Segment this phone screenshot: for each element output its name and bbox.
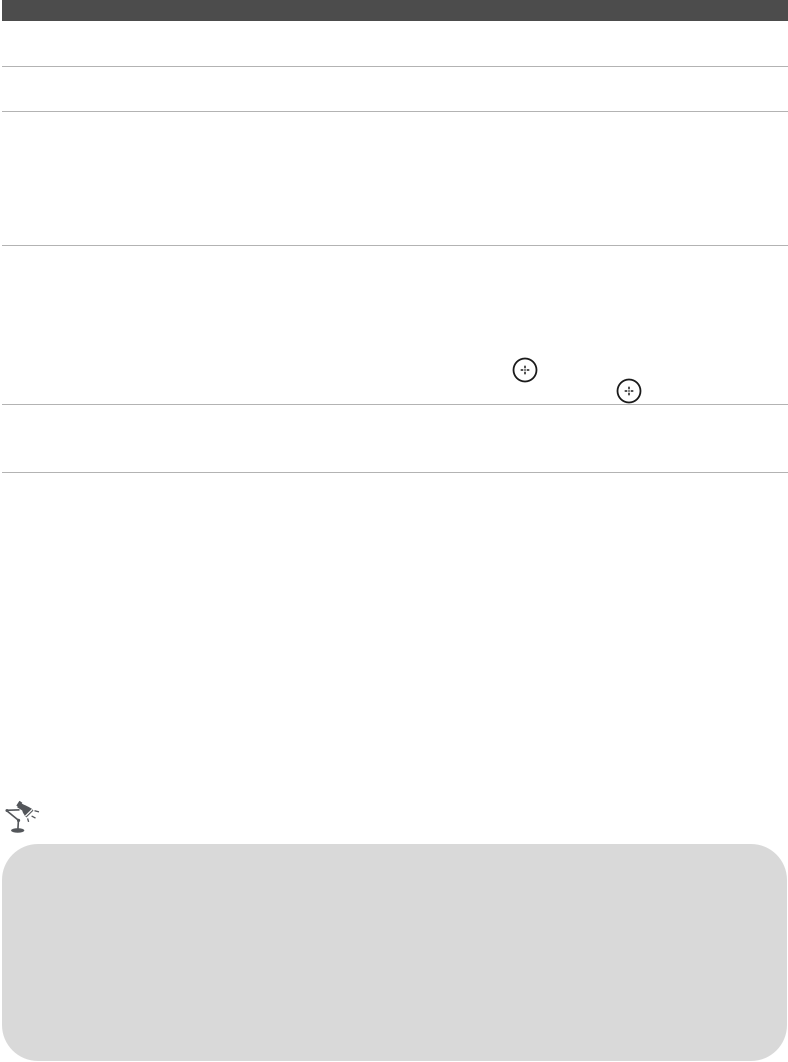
button[interactable]: Panel <box>2 844 787 1061</box>
